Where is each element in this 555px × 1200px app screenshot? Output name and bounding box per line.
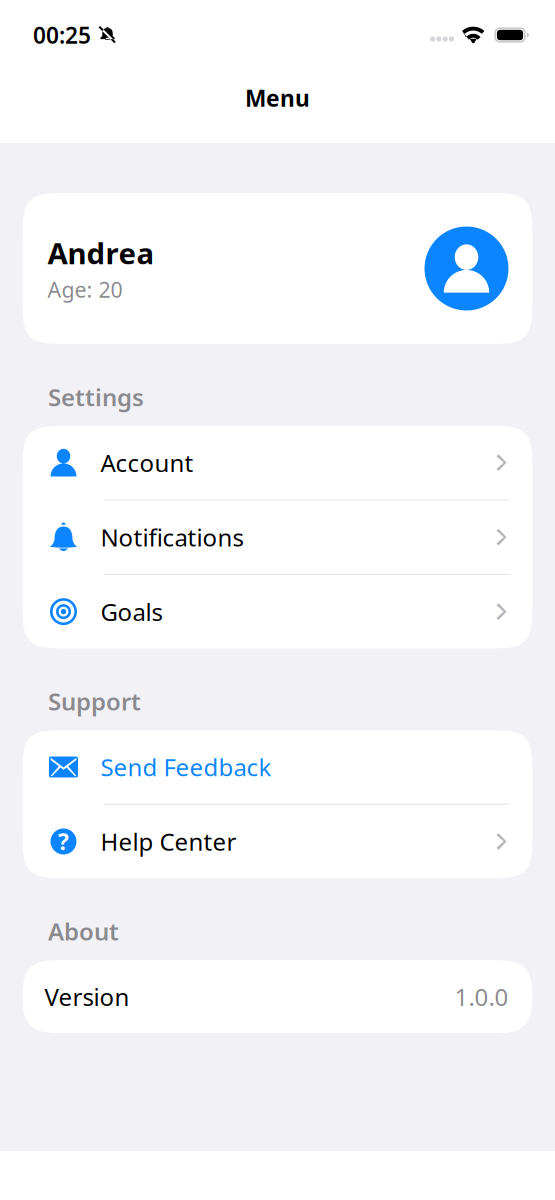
staticText: Notifications (100, 521, 243, 553)
staticText: Support (48, 685, 141, 717)
button[interactable]: Send Feedback (22, 730, 532, 804)
staticText: Age: 20 (47, 275, 122, 304)
staticText: 00:25 (33, 20, 91, 50)
staticText: ? (58, 826, 69, 856)
button[interactable]: Notifications (22, 500, 532, 574)
button[interactable]: ? (22, 805, 532, 878)
staticText: Menu (245, 83, 310, 113)
staticText: Send Feedback (100, 751, 271, 783)
button[interactable]: Goals (22, 575, 532, 648)
button[interactable]: Account (22, 426, 532, 499)
staticText: Settings (48, 381, 144, 413)
button[interactable]: Andrea (22, 193, 532, 344)
staticText: Goals (100, 596, 162, 628)
staticText: Andrea (47, 233, 154, 272)
staticText: Help Center (100, 826, 236, 857)
staticText: 1.0.0 (454, 981, 508, 1013)
staticText: Account (100, 447, 193, 479)
staticText: About (48, 915, 119, 947)
staticText: Version (44, 981, 129, 1013)
